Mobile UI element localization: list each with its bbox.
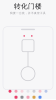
staticText: 转化门楼 xyxy=(14,2,42,10)
button[interactable]: Tool xyxy=(26,96,29,99)
button[interactable]: Colour xyxy=(14,90,17,93)
button[interactable]: Colour xyxy=(26,90,29,93)
button[interactable]: Tool xyxy=(20,96,23,99)
button[interactable]: Colour xyxy=(20,90,23,93)
button[interactable]: Tool xyxy=(32,96,35,99)
button[interactable]: Tool xyxy=(38,96,41,99)
button[interactable]: Tool xyxy=(14,96,17,99)
button[interactable]: Colour xyxy=(44,90,47,93)
button[interactable]: Colour xyxy=(8,90,11,93)
staticText: 我要一台统，并不真管工具 xyxy=(10,11,46,15)
button[interactable]: Colour xyxy=(32,90,35,93)
button[interactable]: Colour xyxy=(38,90,41,93)
